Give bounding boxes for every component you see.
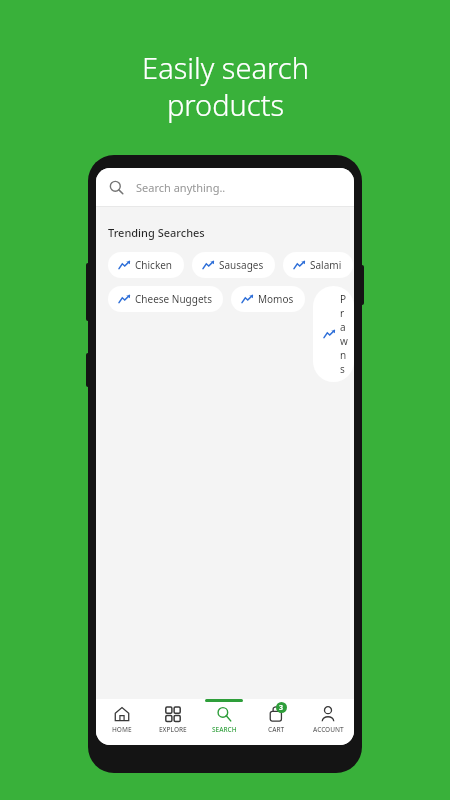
staticText: CART [268,725,285,734]
button[interactable]: Salami [283,252,353,278]
staticText: Search anything.. [136,180,226,195]
button[interactable]: Momos [231,286,305,312]
button[interactable]: Search anything.. [96,168,354,206]
button[interactable]: SEARCH [198,699,250,745]
button[interactable]: Cheese Nuggets [108,286,223,312]
staticText: Momos [258,292,294,306]
staticText: Trending Searches [108,225,205,240]
button[interactable]: EXPLORE [147,699,198,745]
staticText: EXPLORE [159,725,187,734]
button[interactable]: Chicken [108,252,184,278]
button[interactable]: Sausages [192,252,275,278]
staticText: Salami [310,258,342,272]
staticText: Chicken [135,258,173,272]
staticText: ACCOUNT [313,725,344,734]
button[interactable]: ACCOUNT [302,699,354,745]
staticText: Sausages [219,258,264,272]
staticText: SEARCH [212,725,237,734]
staticText: Easily search products [142,48,309,125]
button[interactable]: Prawns [313,286,354,382]
button[interactable]: CART [250,699,302,745]
staticText: Cheese Nuggets [135,292,212,306]
staticText: HOME [112,725,132,734]
button[interactable]: HOME [96,699,147,745]
staticText: Prawns [340,292,343,376]
staticText: 3 [279,703,284,713]
